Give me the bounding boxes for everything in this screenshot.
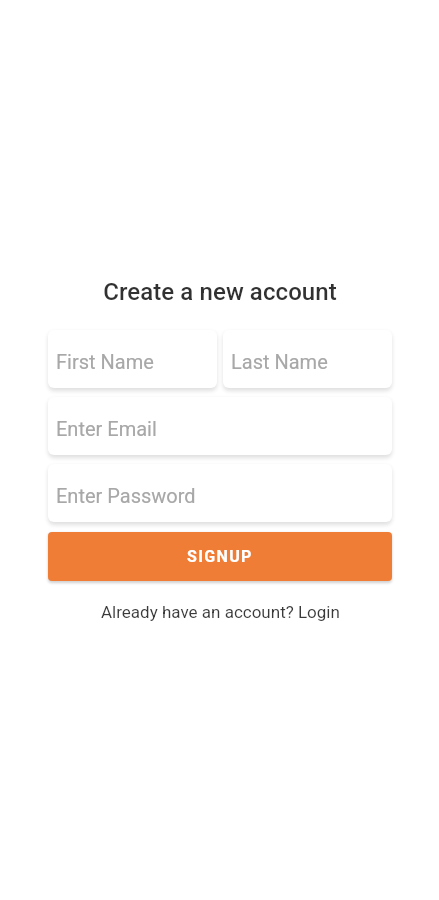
staticText: Enter Email — [56, 417, 157, 440]
button[interactable]: First Name — [48, 330, 217, 388]
button[interactable]: Already have an account? Login — [48, 602, 392, 622]
button[interactable]: Enter Password — [48, 464, 392, 522]
staticText: Enter Password — [56, 484, 196, 507]
staticText: Already have an account? Login — [101, 602, 340, 622]
button[interactable]: Enter Email — [48, 397, 392, 455]
staticText: SIGNUP — [187, 547, 253, 566]
staticText: Last Name — [231, 350, 328, 373]
staticText: Create a new account — [48, 278, 392, 306]
button[interactable]: SIGNUP — [48, 532, 392, 581]
button[interactable]: Last Name — [223, 330, 392, 388]
staticText: First Name — [56, 350, 154, 373]
